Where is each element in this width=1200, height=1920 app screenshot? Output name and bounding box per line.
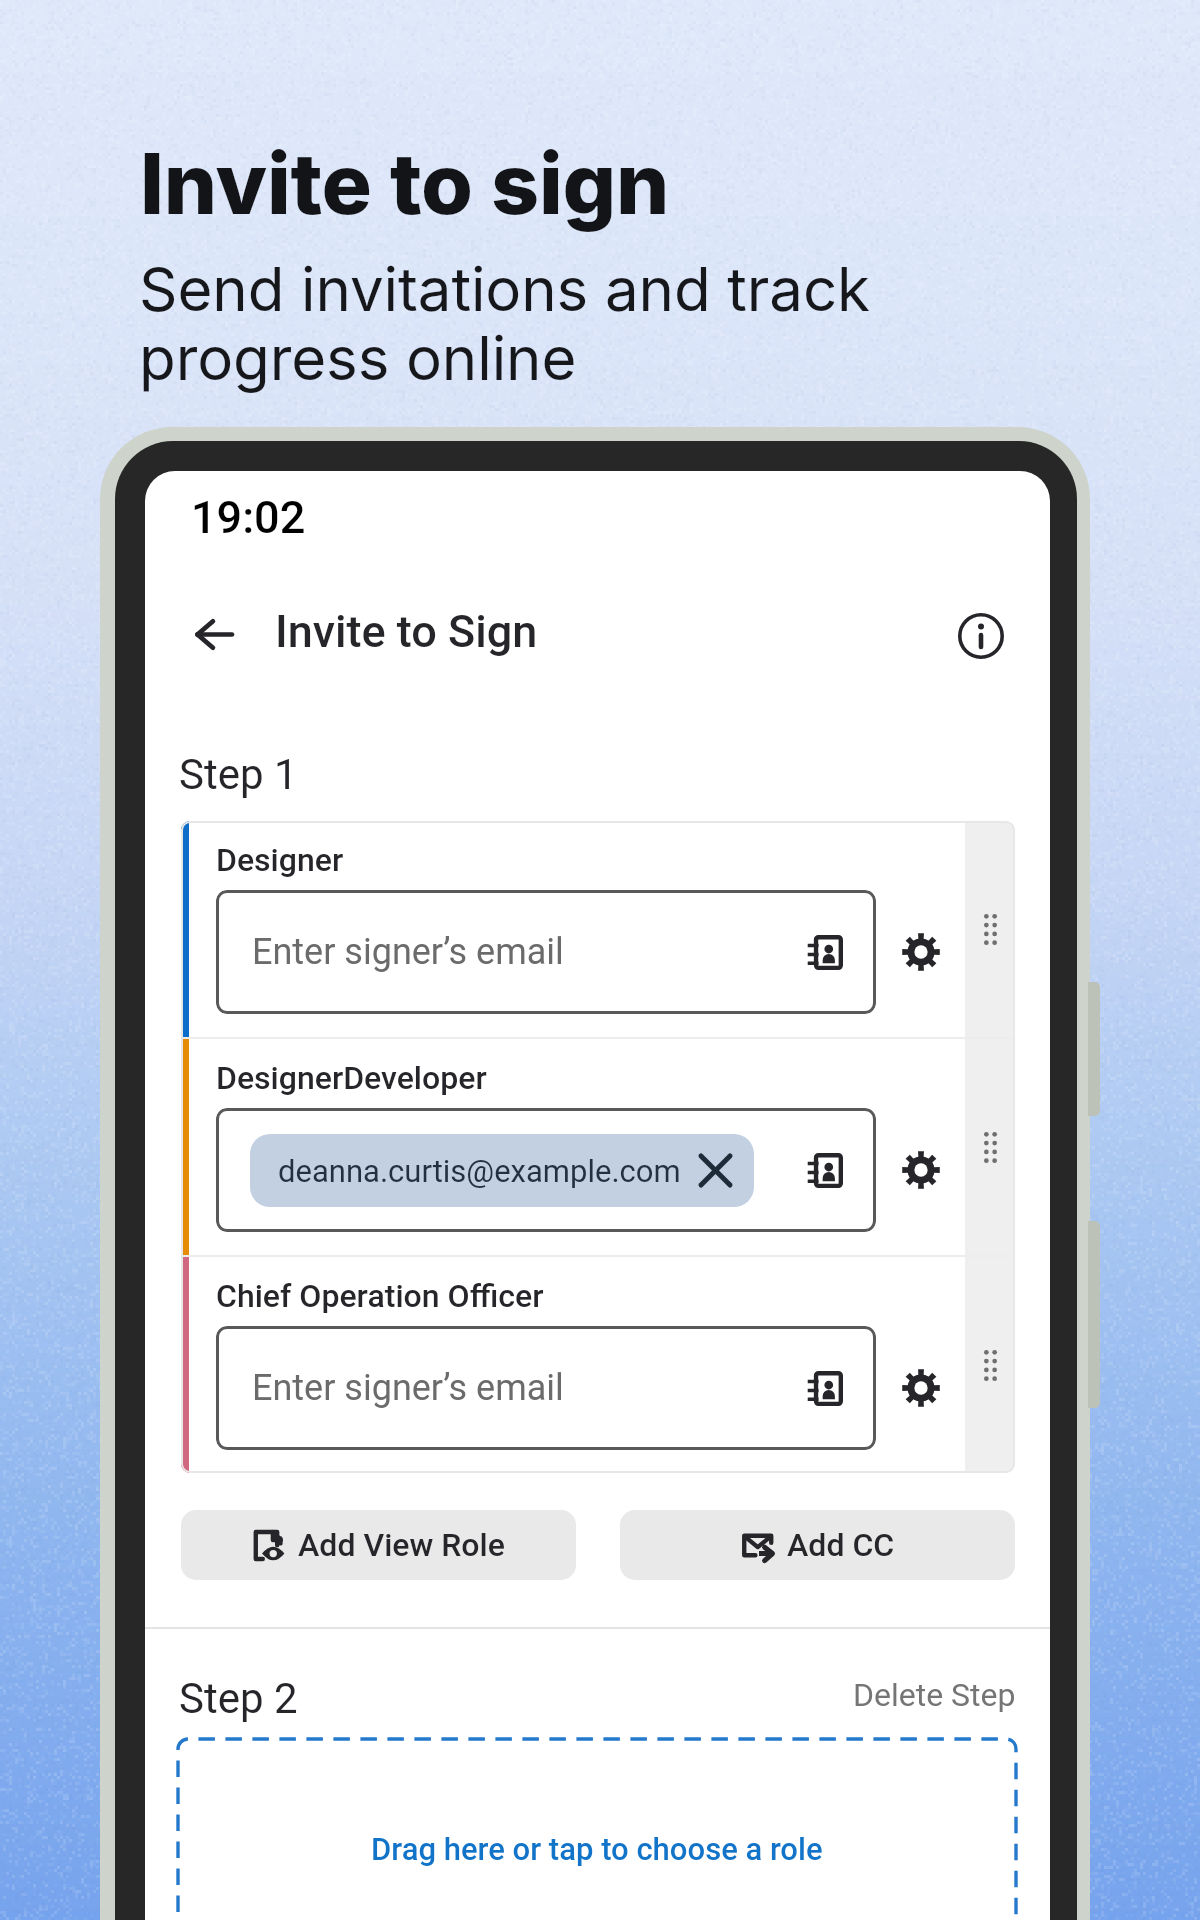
staticText: Chief Operation Officer bbox=[216, 1277, 544, 1315]
button[interactable]: Enter signer’s email bbox=[216, 890, 876, 1014]
button[interactable]: Choose contact bbox=[795, 1140, 855, 1200]
staticText: Drag here or tap to choose a role bbox=[371, 1831, 823, 1867]
button[interactable]: Add CC bbox=[620, 1510, 1015, 1580]
button[interactable]: Reorder bbox=[965, 821, 1015, 1037]
button[interactable]: Info bbox=[936, 591, 1026, 681]
button[interactable]: Choose contact bbox=[795, 1358, 855, 1418]
staticText: Invite to sign bbox=[140, 133, 670, 235]
button[interactable]: Choose contact bbox=[795, 922, 855, 982]
button[interactable]: Drag here or tap to choose a role bbox=[178, 1739, 1016, 1920]
button[interactable]: Settings bbox=[888, 1355, 954, 1421]
staticText: Enter signer’s email bbox=[252, 931, 564, 973]
staticText: deanna.curtis@example.com bbox=[278, 1153, 681, 1189]
button[interactable]: Reorder bbox=[965, 1257, 1015, 1473]
staticText: Add CC bbox=[787, 1526, 895, 1564]
button[interactable]: Delete Step bbox=[745, 1665, 1016, 1725]
button[interactable]: Settings bbox=[888, 919, 954, 985]
staticText: 19:02 bbox=[191, 491, 306, 544]
staticText: Invite to Sign bbox=[275, 605, 538, 658]
staticText: Send invitations and track progress onli… bbox=[139, 253, 870, 395]
button[interactable]: Reorder bbox=[965, 1039, 1015, 1255]
staticText: Designer bbox=[216, 841, 344, 879]
staticText: DesignerDeveloper bbox=[216, 1059, 487, 1097]
button[interactable]: deanna.curtis@example.com bbox=[216, 1108, 876, 1232]
staticText: Delete Step bbox=[853, 1676, 1016, 1714]
button[interactable]: Add View Role bbox=[181, 1510, 576, 1580]
staticText: Enter signer’s email bbox=[252, 1367, 564, 1409]
button[interactable]: Enter signer’s email bbox=[216, 1326, 876, 1450]
button[interactable]: Settings bbox=[888, 1137, 954, 1203]
staticText: Step 2 bbox=[179, 1674, 298, 1723]
staticText: Step 1 bbox=[179, 750, 298, 799]
button[interactable]: Back bbox=[168, 588, 260, 680]
button[interactable]: deanna.curtis@example.com bbox=[250, 1134, 754, 1207]
staticText: Add View Role bbox=[298, 1526, 505, 1564]
